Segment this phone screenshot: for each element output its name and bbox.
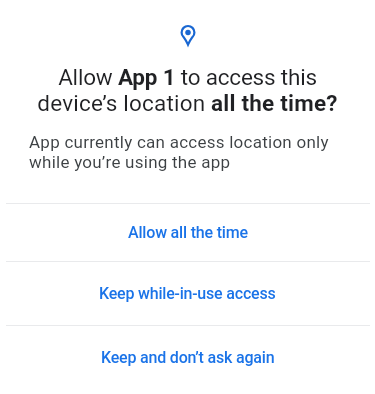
button[interactable]: Allow all the time: [0, 204, 375, 261]
staticText: Keep and don’t ask again: [101, 348, 275, 367]
staticText: App currently can access location only w…: [29, 132, 359, 172]
staticText: Keep while-in-use access: [99, 284, 276, 303]
staticText: Allow App 1 to access this: [0, 64, 375, 90]
staticText: Allow all the time: [128, 223, 248, 242]
button[interactable]: Keep while-in-use access: [0, 262, 375, 325]
button[interactable]: Keep and don’t ask again: [0, 326, 375, 389]
staticText: device’s location all the time?: [0, 90, 375, 116]
